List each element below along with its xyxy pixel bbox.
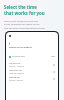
staticText: In Person Visit [12,55,25,58]
staticText: Afternoon Slot [9,69,22,72]
staticText: 4:00 PM - 8:00 PM [9,79,24,81]
staticText: Select the time that works for you [4,4,45,16]
staticText: Free [51,55,55,58]
staticText: 12:00 PM - 4:00 PM [9,72,25,74]
staticText: Select your preferred time slot & our en… [4,19,46,30]
staticText: Evening Slot [9,76,20,79]
button[interactable]: Evening Slot [6,75,58,82]
staticText: Morning Slot [9,62,21,65]
staticText: Name of the expert [9,45,32,48]
staticText: 9:00 AM - 12:00 PM [9,65,25,67]
button[interactable]: Back [8,42,11,45]
button[interactable]: Afternoon Slot [6,68,58,75]
button[interactable]: Morning Slot [6,61,58,68]
